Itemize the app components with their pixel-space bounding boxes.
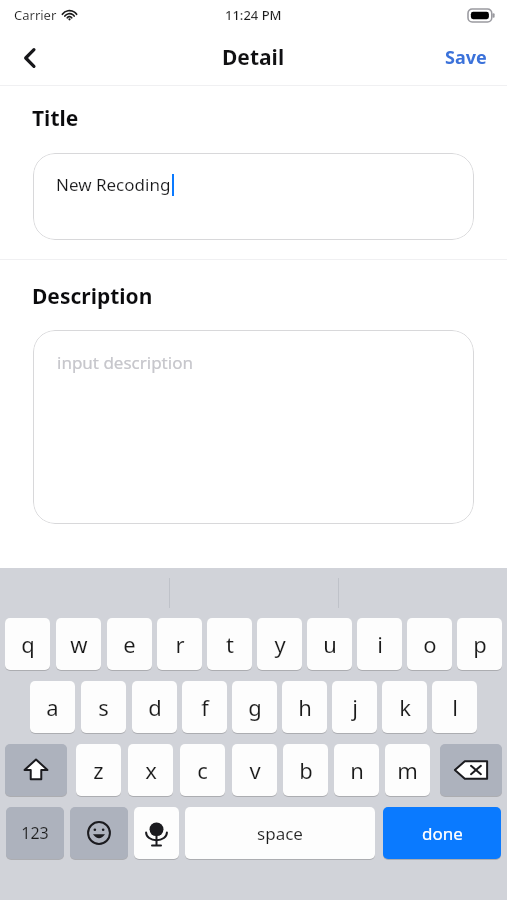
button[interactable]: l	[432, 681, 477, 733]
staticText: f	[201, 692, 209, 722]
button[interactable]: o	[407, 618, 452, 670]
staticText: l	[452, 692, 458, 722]
button[interactable]: u	[307, 618, 352, 670]
staticText: t	[226, 629, 234, 659]
button[interactable]: New Recoding	[33, 153, 474, 240]
staticText: d	[148, 692, 162, 722]
staticText: m	[397, 755, 418, 785]
staticText: y	[274, 629, 286, 659]
button[interactable]: a	[30, 681, 75, 733]
button[interactable]: f	[182, 681, 227, 733]
staticText: space	[257, 822, 303, 845]
staticText: z	[93, 755, 104, 785]
button[interactable]: e	[107, 618, 152, 670]
staticText: 123	[21, 822, 49, 844]
staticText: e	[123, 629, 136, 659]
staticText: v	[249, 755, 261, 785]
button[interactable]: Back	[8, 36, 52, 80]
button[interactable]: t	[207, 618, 252, 670]
button[interactable]: q	[5, 618, 50, 670]
staticText: r	[175, 629, 185, 659]
staticText: o	[423, 629, 437, 659]
button[interactable]: j	[332, 681, 377, 733]
staticText: New Recoding	[56, 173, 171, 196]
button[interactable]: k	[382, 681, 427, 733]
staticText: input description	[57, 351, 193, 374]
button[interactable]: i	[357, 618, 402, 670]
staticText: i	[377, 629, 383, 659]
button[interactable]: s	[81, 681, 126, 733]
button[interactable]: c	[180, 744, 225, 796]
button[interactable]: Shift	[5, 744, 67, 796]
button[interactable]: w	[56, 618, 101, 670]
staticText: q	[21, 629, 35, 659]
button[interactable]: r	[157, 618, 202, 670]
button[interactable]: Emoji	[70, 807, 128, 859]
staticText: g	[248, 692, 262, 722]
button[interactable]: Save	[439, 39, 493, 76]
button[interactable]: 123	[6, 807, 64, 859]
staticText: w	[70, 629, 88, 659]
button[interactable]: b	[283, 744, 328, 796]
button[interactable]: n	[334, 744, 379, 796]
staticText: j	[352, 692, 358, 722]
staticText: x	[145, 755, 157, 785]
button[interactable]: input description	[33, 330, 474, 524]
staticText: k	[399, 692, 411, 722]
staticText: n	[350, 755, 364, 785]
button[interactable]: Dictate	[134, 807, 179, 859]
staticText: Save	[445, 45, 487, 70]
button[interactable]: Backspace	[440, 744, 502, 796]
staticText: p	[473, 629, 487, 659]
staticText: 11:24 PM	[225, 6, 282, 24]
staticText: s	[98, 692, 109, 722]
button[interactable]: m	[385, 744, 430, 796]
staticText: Detail	[222, 43, 285, 72]
button[interactable]: v	[232, 744, 277, 796]
button[interactable]: x	[128, 744, 173, 796]
button[interactable]: y	[257, 618, 302, 670]
staticText: u	[323, 629, 337, 659]
staticText: b	[299, 755, 313, 785]
staticText: Carrier	[14, 6, 57, 24]
staticText: done	[422, 822, 463, 845]
button[interactable]: z	[76, 744, 121, 796]
button[interactable]: space	[185, 807, 375, 859]
staticText: Description	[32, 282, 153, 311]
staticText: h	[298, 692, 312, 722]
staticText: a	[46, 692, 59, 722]
button[interactable]: p	[457, 618, 502, 670]
button[interactable]: h	[282, 681, 327, 733]
button[interactable]: d	[132, 681, 177, 733]
button[interactable]: done	[383, 807, 501, 859]
staticText: c	[197, 755, 208, 785]
button[interactable]: g	[232, 681, 277, 733]
staticText: Title	[32, 104, 79, 133]
